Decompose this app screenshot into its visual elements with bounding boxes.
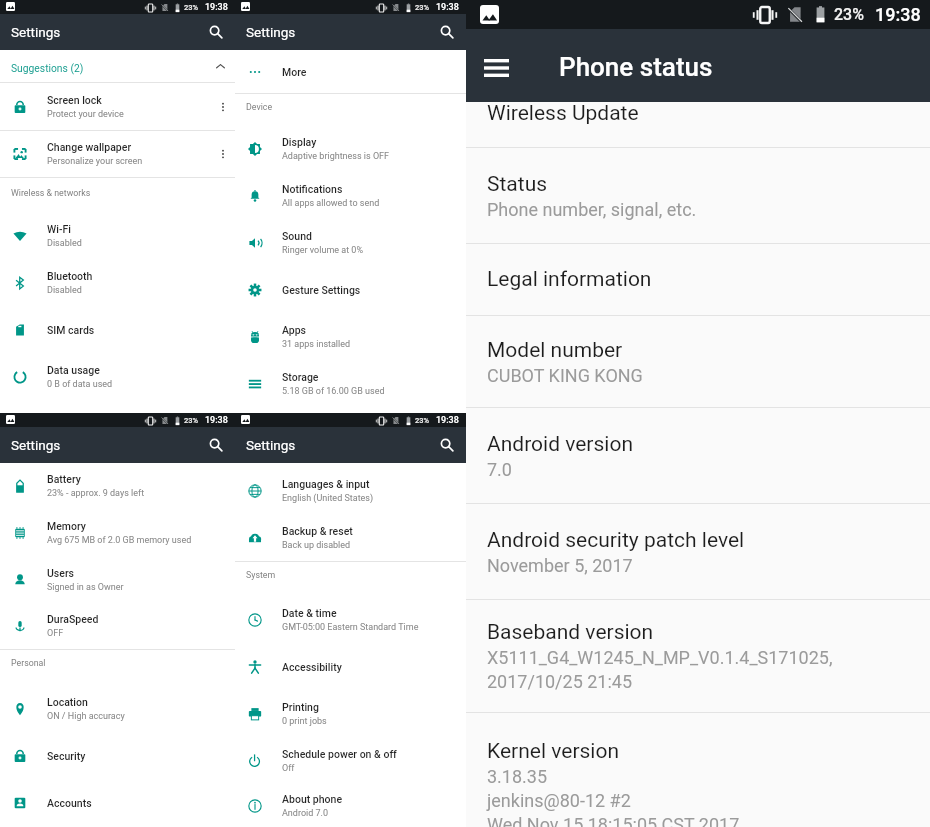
staticText: Battery	[47, 473, 81, 485]
staticText: English (United States)	[282, 493, 374, 504]
button[interactable]: Wi-Fi	[0, 212, 235, 259]
staticText: Storage	[282, 371, 319, 383]
button[interactable]: DuraSpeed	[0, 603, 235, 649]
staticText: 31 apps installed	[282, 339, 351, 350]
button[interactable]: Backup & reset	[235, 514, 466, 561]
staticText: Accessibility	[282, 661, 342, 673]
staticText: Settings	[246, 24, 296, 40]
staticText: 23%	[184, 416, 199, 425]
staticText: All apps allowed to send	[282, 198, 380, 209]
staticText: About phone	[282, 793, 343, 805]
staticText: Screen lock	[47, 94, 102, 106]
button[interactable]: Search	[436, 434, 458, 456]
staticText: Status	[487, 172, 548, 197]
staticText: GMT-05:00 Eastern Standard Time	[282, 622, 419, 633]
button[interactable]: Languages & input	[235, 467, 466, 514]
button[interactable]: Location	[0, 685, 235, 732]
button[interactable]: Bluetooth	[0, 259, 235, 306]
staticText: 19:38	[875, 4, 921, 25]
button[interactable]: Display	[235, 125, 466, 172]
button[interactable]: Model number	[466, 316, 930, 407]
staticText: Location	[47, 696, 88, 708]
staticText: Gesture Settings	[282, 284, 361, 296]
staticText: Avg 675 MB of 2.0 GB memory used	[47, 535, 192, 546]
button[interactable]: More options	[211, 131, 235, 177]
button[interactable]: Data usage	[0, 353, 235, 400]
button[interactable]: Memory	[0, 509, 235, 556]
button[interactable]: SIM cards	[0, 306, 235, 353]
staticText: Memory	[47, 520, 86, 532]
button[interactable]: Kernel version	[466, 713, 930, 827]
staticText: CUBOT KING KONG	[487, 365, 643, 386]
staticText: DuraSpeed	[47, 613, 99, 625]
staticText: 23% - approx. 9 days left	[47, 488, 145, 499]
button[interactable]: Screen lock	[0, 83, 235, 130]
staticText: 0 print jobs	[282, 716, 327, 727]
button[interactable]: About phone	[235, 784, 466, 827]
button[interactable]: Legal information	[466, 244, 930, 315]
staticText: Disabled	[47, 285, 82, 296]
staticText: Languages & input	[282, 478, 370, 490]
staticText: 23%	[184, 3, 199, 12]
button[interactable]: Android version	[466, 408, 930, 503]
button[interactable]: Notifications	[235, 172, 466, 219]
button[interactable]: Apps	[235, 313, 466, 360]
button[interactable]: Search	[205, 21, 227, 43]
staticText: Change wallpaper	[47, 141, 132, 153]
staticText: Wireless & networks	[11, 188, 91, 198]
button[interactable]: Search	[205, 434, 227, 456]
button[interactable]: Suggestions (2)	[0, 50, 235, 82]
staticText: Wi-Fi	[47, 223, 71, 235]
staticText: System	[246, 570, 276, 580]
button[interactable]: Android security patch level	[466, 504, 930, 599]
button[interactable]: Sound	[235, 219, 466, 266]
button[interactable]: Storage	[235, 360, 466, 407]
staticText: 5.18 GB of 16.00 GB used	[282, 386, 385, 397]
button[interactable]: Status	[466, 148, 930, 243]
button[interactable]: Printing	[235, 690, 466, 737]
staticText: Model number	[487, 338, 623, 363]
staticText: Sound	[282, 230, 312, 242]
staticText: Apps	[282, 324, 306, 336]
staticText: Android version	[487, 432, 633, 457]
staticText: Personalize your screen	[47, 156, 143, 167]
button[interactable]: Wireless Update	[466, 102, 930, 147]
staticText: Suggestions (2)	[11, 62, 205, 74]
staticText: Ringer volume at 0%	[282, 245, 364, 256]
staticText: 23%	[834, 5, 864, 24]
button[interactable]: Gesture Settings	[235, 266, 466, 313]
staticText: Back up disabled	[282, 540, 351, 551]
staticText: X5111_G4_W1245_N_MP_V0.1.4_S171025, 2017…	[487, 647, 833, 692]
staticText: Settings	[246, 437, 296, 453]
staticText: Accounts	[47, 797, 92, 809]
staticText: Android security patch level	[487, 528, 745, 553]
staticText: 0 B of data used	[47, 379, 113, 390]
button[interactable]: Baseband version	[466, 600, 930, 712]
staticText: Phone status	[559, 52, 713, 82]
button[interactable]: Accounts	[0, 779, 235, 826]
staticText: Users	[47, 567, 75, 579]
staticText: 19:38	[205, 415, 228, 426]
staticText: SIM cards	[47, 324, 95, 336]
button[interactable]: Security	[0, 732, 235, 779]
staticText: Signed in as Owner	[47, 582, 124, 593]
button[interactable]: More	[235, 50, 466, 93]
staticText: Security	[47, 750, 86, 762]
button[interactable]: Date & time	[235, 596, 466, 643]
button[interactable]: Users	[0, 556, 235, 603]
staticText: Schedule power on & off	[282, 748, 397, 760]
staticText: Kernel version	[487, 739, 620, 764]
button[interactable]: Schedule power on & off	[235, 737, 466, 784]
button[interactable]: Accessibility	[235, 643, 466, 690]
button[interactable]: Change wallpaper	[0, 131, 235, 177]
staticText: More	[282, 66, 307, 78]
button[interactable]: Battery	[0, 463, 235, 509]
button[interactable]: Search	[436, 21, 458, 43]
staticText: Disabled	[47, 238, 82, 249]
staticText: Protect your device	[47, 109, 124, 120]
button[interactable]: More options	[211, 83, 235, 130]
staticText: 3.18.35 jenkins@80-12 #2 Wed Nov 15 18:1…	[487, 766, 740, 827]
staticText: Phone number, signal, etc.	[487, 199, 697, 220]
staticText: OFF	[47, 628, 64, 639]
button[interactable]: Navigation menu	[478, 50, 514, 86]
